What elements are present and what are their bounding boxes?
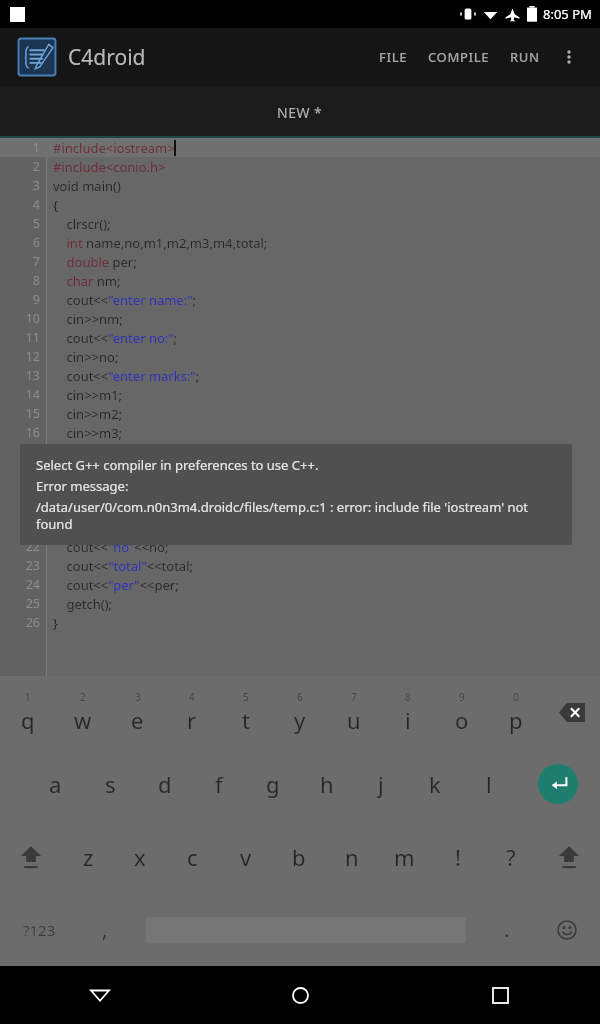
staticText: COMPILE xyxy=(428,48,490,66)
button[interactable]: 0 xyxy=(489,676,543,748)
button[interactable]: Backspace xyxy=(543,676,600,748)
staticText: a xyxy=(49,769,62,799)
staticText: e xyxy=(131,705,144,735)
staticText: { xyxy=(53,196,58,214)
button[interactable]: ? xyxy=(484,820,537,893)
staticText: 9 xyxy=(0,291,40,308)
staticText: c xyxy=(187,842,198,872)
staticText: int name,no,m1,m2,m3,m4,total; xyxy=(53,234,268,252)
staticText: cout<<"total"<<total; xyxy=(53,557,193,575)
staticText: 12 xyxy=(0,348,40,365)
staticText: cout<<"per"<<per; xyxy=(53,576,179,594)
button[interactable]: f xyxy=(192,748,246,820)
button[interactable]: ! xyxy=(431,820,484,893)
staticText: NEW * xyxy=(277,103,323,122)
staticText: v xyxy=(240,842,252,872)
staticText: 8 xyxy=(0,272,40,289)
staticText: 13 xyxy=(0,367,40,384)
staticText: cin>>m1; xyxy=(53,386,123,404)
staticText: ?123 xyxy=(23,920,56,940)
staticText: 16 xyxy=(0,424,40,441)
staticText: i xyxy=(405,705,411,735)
staticText: 1 xyxy=(25,690,31,704)
button[interactable]: 2 xyxy=(55,676,110,748)
staticText: total=m1+m2+m3+m4; xyxy=(53,462,207,480)
button[interactable]: RUN xyxy=(508,42,542,72)
button[interactable]: 1 xyxy=(0,676,55,748)
button[interactable]: Shift xyxy=(0,820,62,893)
button[interactable]: More options xyxy=(554,42,584,72)
staticText: . xyxy=(504,916,510,943)
staticText: getch(); xyxy=(53,595,113,613)
staticText: 26 xyxy=(0,614,40,631)
button[interactable]: m xyxy=(378,820,431,893)
button[interactable]: h xyxy=(300,748,354,820)
staticText: j xyxy=(378,769,384,799)
button[interactable]: Enter xyxy=(516,748,600,820)
button[interactable]: j xyxy=(354,748,408,820)
button[interactable]: n xyxy=(325,820,378,893)
staticText: m xyxy=(394,842,415,872)
button[interactable]: 7 xyxy=(327,676,381,748)
staticText: cout<<"enter name:"; xyxy=(53,291,196,309)
staticText: clrscr(); xyxy=(53,500,111,518)
button[interactable]: c xyxy=(166,820,219,893)
button[interactable]: 6 xyxy=(273,676,327,748)
button[interactable]: 1 xyxy=(0,138,600,676)
button[interactable]: l xyxy=(462,748,516,820)
staticText: x xyxy=(134,842,146,872)
staticText: 15 xyxy=(0,405,40,422)
button[interactable]: 3 xyxy=(110,676,165,748)
staticText: , xyxy=(102,916,108,943)
staticText: 3 xyxy=(135,690,141,704)
button[interactable]: Back xyxy=(0,966,200,1024)
button[interactable]: FILE xyxy=(377,42,410,72)
staticText: cin>>no; xyxy=(53,348,119,366)
staticText: 11 xyxy=(0,329,40,346)
staticText: 6 xyxy=(0,234,40,251)
staticText: r xyxy=(187,705,197,735)
button[interactable]: b xyxy=(272,820,325,893)
button[interactable]: 8 xyxy=(381,676,435,748)
staticText: void main() xyxy=(53,177,121,195)
button[interactable]: x xyxy=(114,820,166,893)
staticText: 20 xyxy=(0,500,40,517)
button[interactable]: k xyxy=(408,748,462,820)
staticText: #include<iostream> xyxy=(53,139,175,157)
staticText: Error message: xyxy=(36,477,129,495)
button[interactable]: Home xyxy=(200,966,400,1024)
staticText: 8 xyxy=(405,690,411,704)
button[interactable]: Space xyxy=(132,893,480,966)
staticText: 21 xyxy=(0,519,40,536)
button[interactable]: Recent apps xyxy=(400,966,600,1024)
button[interactable]: Emoji xyxy=(534,893,600,966)
button[interactable]: NEW * xyxy=(0,86,600,138)
staticText: 9 xyxy=(459,690,465,704)
button[interactable]: COMPILE xyxy=(426,42,492,72)
button[interactable]: 9 xyxy=(435,676,489,748)
staticText: 10 xyxy=(0,310,40,327)
staticText: 25 xyxy=(0,595,40,612)
button[interactable]: v xyxy=(219,820,272,893)
button[interactable]: d xyxy=(138,748,192,820)
button[interactable]: Shift xyxy=(537,820,600,893)
staticText: double per; xyxy=(53,253,137,271)
button[interactable]: a xyxy=(28,748,83,820)
button[interactable]: ?123 xyxy=(0,893,78,966)
staticText: char nm; xyxy=(53,272,121,290)
staticText: 3 xyxy=(0,177,40,194)
button[interactable]: z xyxy=(62,820,114,893)
button[interactable]: g xyxy=(246,748,300,820)
button[interactable]: s xyxy=(83,748,138,820)
staticText: cout<< name <<nm; xyxy=(53,519,189,537)
button[interactable]: C4droid app icon xyxy=(16,36,58,78)
button[interactable]: 5 xyxy=(219,676,273,748)
button[interactable]: 4 xyxy=(165,676,219,748)
staticText: 19 xyxy=(0,481,40,498)
staticText: l xyxy=(486,769,492,799)
staticText: p xyxy=(509,705,523,735)
staticText: 0 xyxy=(513,690,519,704)
staticText: 4 xyxy=(0,196,40,213)
